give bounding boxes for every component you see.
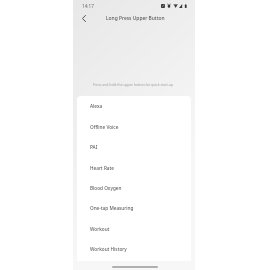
staticText: Heart Rate [90,165,115,171]
button[interactable]: PAI [77,136,191,157]
staticText: Alexa [90,103,103,109]
button[interactable]: Alexa [77,95,191,116]
staticText: One-tap Measuring [90,205,134,211]
button[interactable]: Heart Rate [77,157,191,178]
button[interactable]: Offline Voice [77,116,191,137]
staticText: Blood Oxygen [90,185,122,191]
staticText: 14:17 [82,3,94,9]
button[interactable]: Workout [77,218,191,239]
button[interactable]: One-tap Measuring [77,197,191,218]
button[interactable]: Back [78,13,89,24]
staticText: Press and hold the upper button for quic… [80,82,186,87]
staticText: Workout History [90,246,127,252]
button[interactable]: Blood Oxygen [77,177,191,198]
staticText: Long Press Upper Button [106,15,165,22]
staticText: Workout [90,226,110,232]
staticText: Offline Voice [90,124,119,130]
other: Status icons [161,4,187,8]
button[interactable]: Workout History [77,238,191,259]
staticText: PAI [90,144,98,150]
